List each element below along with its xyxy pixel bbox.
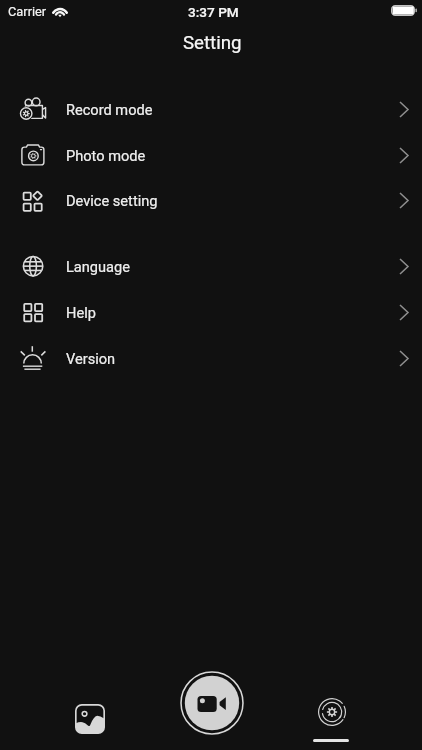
staticText: Version (66, 350, 116, 367)
button[interactable]: Gallery (20, 679, 160, 739)
staticText: Help (66, 304, 96, 321)
staticText: Record mode (66, 101, 153, 118)
button[interactable]: Version (0, 335, 422, 381)
staticText: Photo mode (66, 147, 146, 164)
staticText: Language (66, 258, 130, 275)
button[interactable]: Help (0, 289, 422, 335)
button[interactable]: Language (0, 243, 422, 289)
button[interactable]: Device setting (0, 177, 422, 223)
button[interactable]: Record mode (0, 86, 422, 132)
staticText: Carrier (8, 4, 47, 19)
button[interactable]: Settings (262, 682, 401, 742)
staticText: 3:37 PM (188, 4, 239, 20)
staticText: Device setting (66, 192, 158, 209)
staticText: Setting (183, 32, 242, 54)
button[interactable]: Photo mode (0, 132, 422, 178)
button[interactable]: Record (180, 671, 244, 735)
